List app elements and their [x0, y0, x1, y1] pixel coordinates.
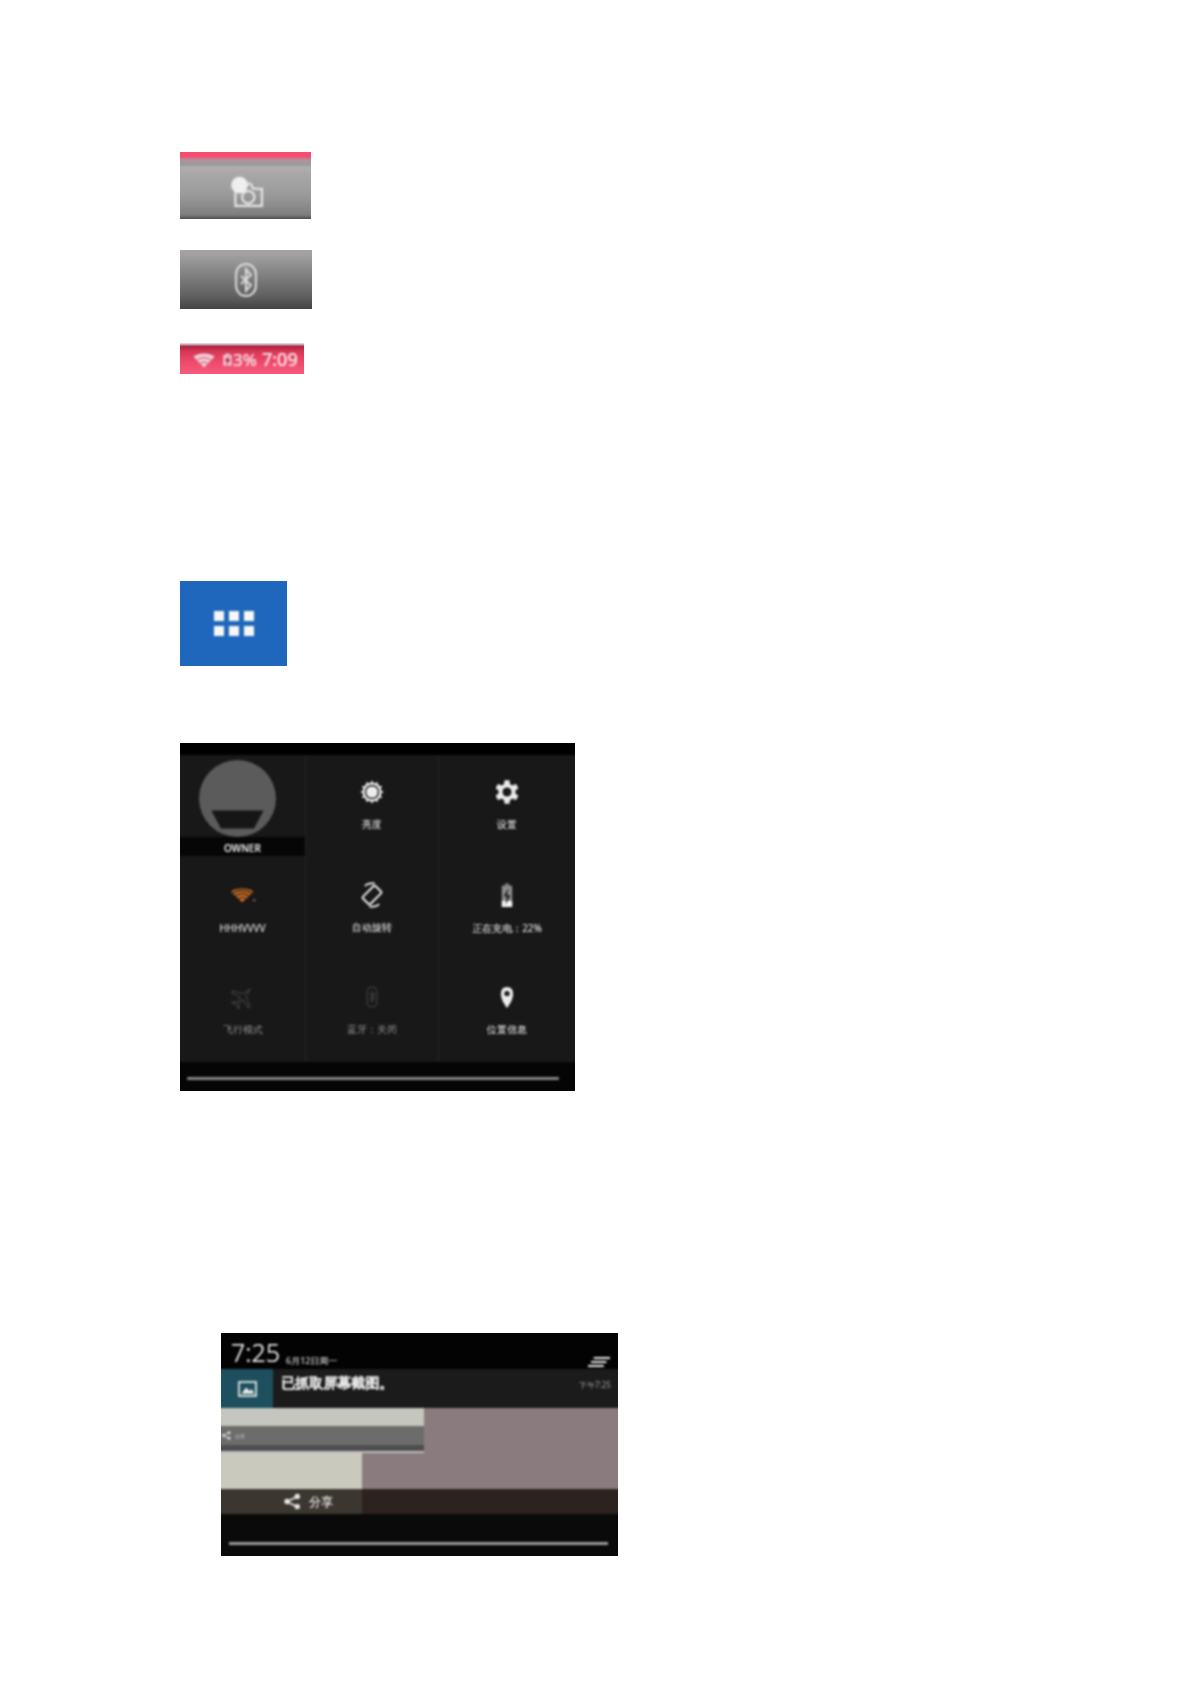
staticText: 已抓取屏幕截图。 — [281, 1375, 393, 1393]
button[interactable]: All apps — [180, 581, 287, 666]
button[interactable]: Notification settings — [588, 1357, 610, 1367]
staticText: 自动旋转 — [352, 921, 392, 934]
button[interactable]: 飞行模式 — [180, 960, 305, 1062]
button[interactable]: Bluetooth button — [180, 250, 312, 309]
staticText: 分享 — [309, 1494, 333, 1509]
button[interactable]: 已抓取屏幕截图。 — [221, 1369, 618, 1408]
button[interactable]: 自动旋转 — [306, 858, 438, 960]
staticText: HHHVVVV — [219, 921, 266, 935]
staticText: 6月12日周一 — [286, 1354, 338, 1366]
button[interactable]: 设置 — [439, 755, 575, 858]
staticText: 蓝牙：关闭 — [347, 1023, 397, 1036]
button[interactable]: Screenshot camera button — [180, 166, 311, 219]
staticText: 设置 — [497, 818, 517, 831]
staticText: OWNER — [224, 841, 261, 855]
button[interactable]: HHHVVVV — [180, 858, 305, 960]
button[interactable]: 正在充电：22% — [439, 858, 575, 960]
button[interactable]: OWNER — [180, 755, 305, 858]
staticText: 亮度 — [362, 818, 382, 831]
button[interactable]: 位置信息 — [439, 960, 575, 1062]
staticText: 3% — [233, 348, 257, 371]
staticText: 下午7:25 — [579, 1379, 611, 1390]
staticText: 分享 — [235, 1433, 245, 1439]
button[interactable]: 蓝牙：关闭 — [306, 960, 438, 1062]
button[interactable]: 亮度 — [306, 755, 438, 858]
staticText: 7:09 — [262, 347, 298, 372]
staticText: 7:25 — [231, 1335, 280, 1369]
staticText: 飞行模式 — [223, 1023, 263, 1036]
staticText: 位置信息 — [487, 1023, 527, 1036]
button[interactable]: 分享 — [221, 1489, 618, 1514]
staticText: 正在充电：22% — [472, 921, 542, 935]
